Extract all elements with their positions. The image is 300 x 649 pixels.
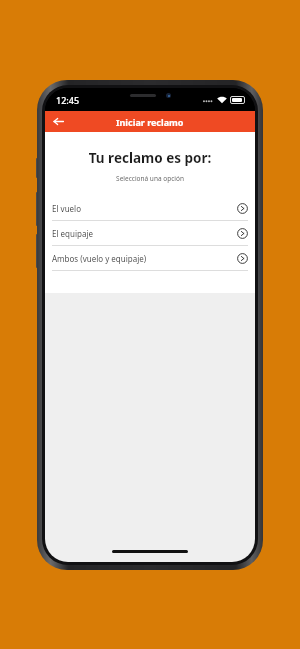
staticText: 12:45 xyxy=(56,94,80,106)
staticText: Seleccioná una opción xyxy=(45,174,255,183)
button[interactable]: Back xyxy=(45,111,71,132)
staticText: El vuelo xyxy=(52,203,82,214)
staticText: Ambos (vuelo y equipaje) xyxy=(52,253,147,264)
staticText: El equipaje xyxy=(52,228,94,239)
staticText: Iniciar reclamo xyxy=(116,116,184,128)
button[interactable]: Ambos (vuelo y equipaje) xyxy=(45,246,255,270)
staticText: Tu reclamo es por: xyxy=(45,149,255,167)
button[interactable]: El vuelo xyxy=(45,196,255,220)
button[interactable]: El equipaje xyxy=(45,221,255,245)
